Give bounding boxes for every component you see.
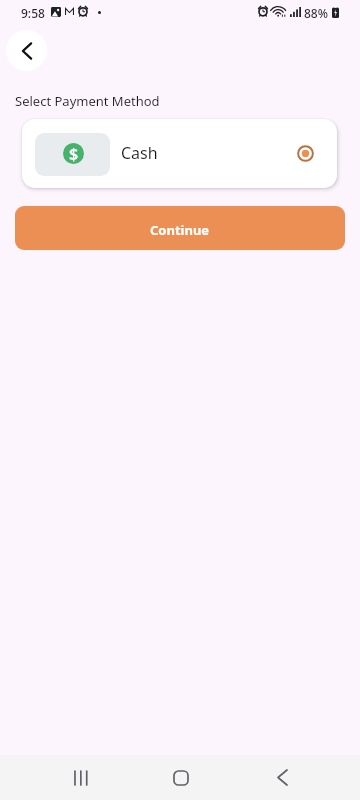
button[interactable]: Continue xyxy=(15,206,345,250)
staticText: 88% xyxy=(304,5,328,21)
staticText: 9:58 xyxy=(21,5,45,21)
button[interactable]: Recent apps xyxy=(56,755,104,800)
staticText: Cash xyxy=(121,142,158,164)
staticText: Select Payment Method xyxy=(15,92,160,110)
button[interactable]: $ xyxy=(22,119,337,188)
button[interactable]: Home xyxy=(157,755,205,800)
staticText: Continue xyxy=(150,221,210,239)
button[interactable]: Back xyxy=(6,30,47,71)
button[interactable]: Cash selected xyxy=(294,142,317,165)
staticText: $ xyxy=(69,143,79,164)
button[interactable]: Back xyxy=(258,755,306,800)
